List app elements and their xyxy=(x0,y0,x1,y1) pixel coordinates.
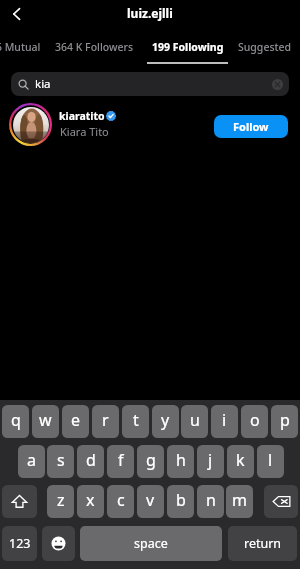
button[interactable]: Emoji xyxy=(42,526,75,561)
button[interactable]: q xyxy=(2,405,29,438)
staticText: p xyxy=(280,409,290,431)
button[interactable]: Follow xyxy=(214,115,288,138)
staticText: b xyxy=(176,489,186,511)
staticText: l xyxy=(268,449,273,471)
button[interactable]: t xyxy=(122,405,149,438)
staticText: luiz.ejlli xyxy=(127,5,173,21)
button[interactable]: Shift xyxy=(2,485,37,518)
staticText: f xyxy=(118,449,124,471)
staticText: return xyxy=(244,535,282,552)
staticText: s xyxy=(57,449,65,471)
staticText: m xyxy=(232,489,247,511)
button[interactable]: o xyxy=(241,405,268,438)
button[interactable]: r xyxy=(92,405,119,438)
button[interactable]: 364 K Followers xyxy=(47,34,141,60)
staticText: 364 K Followers xyxy=(55,40,133,54)
staticText: 199 Following xyxy=(152,40,224,54)
staticText: z xyxy=(57,489,65,511)
staticText: kia xyxy=(35,76,51,92)
button[interactable]: p xyxy=(271,405,298,438)
button[interactable]: kiaratito xyxy=(0,100,300,148)
button[interactable]: j xyxy=(197,445,224,478)
button[interactable]: Numbers and symbols xyxy=(2,526,37,561)
button[interactable]: x xyxy=(77,485,104,518)
staticText: i xyxy=(222,409,227,431)
staticText: g xyxy=(146,449,156,471)
staticText: Follow xyxy=(233,119,269,134)
staticText: t xyxy=(133,409,139,431)
button[interactable]: s xyxy=(47,445,74,478)
staticText: c xyxy=(117,489,125,511)
staticText: r xyxy=(102,409,109,431)
staticText: j xyxy=(208,449,213,471)
button[interactable]: 5 Mutual xyxy=(0,34,49,60)
staticText: h xyxy=(176,449,186,471)
button[interactable]: m xyxy=(226,485,253,518)
staticText: x xyxy=(86,489,95,511)
staticText: v xyxy=(146,489,155,511)
staticText: u xyxy=(190,409,200,431)
staticText: a xyxy=(27,449,36,471)
staticText: n xyxy=(206,489,216,511)
staticText: Kiara Tito xyxy=(60,124,109,139)
button[interactable]: k xyxy=(227,445,254,478)
staticText: kiaratito xyxy=(59,109,105,123)
button[interactable]: v xyxy=(137,485,164,518)
button[interactable]: w xyxy=(32,405,59,438)
button[interactable]: Backspace xyxy=(264,485,298,518)
button[interactable]: l xyxy=(257,445,284,478)
button[interactable]: space xyxy=(80,526,222,561)
staticText: w xyxy=(39,409,52,431)
button[interactable]: e xyxy=(62,405,89,438)
button[interactable]: h xyxy=(167,445,194,478)
button[interactable]: u xyxy=(181,405,208,438)
button[interactable]: Clear text xyxy=(270,77,284,91)
button[interactable]: kia xyxy=(11,72,289,96)
button[interactable]: 199 Following xyxy=(144,34,232,60)
staticText: y xyxy=(161,409,170,431)
button[interactable]: b xyxy=(167,485,194,518)
staticText: o xyxy=(250,409,260,431)
staticText: k xyxy=(236,449,245,471)
button[interactable]: n xyxy=(197,485,224,518)
button[interactable]: g xyxy=(137,445,164,478)
button[interactable]: Suggested xyxy=(230,34,300,60)
staticText: 5 Mutual xyxy=(0,40,41,54)
button[interactable]: d xyxy=(77,445,104,478)
staticText: Suggested xyxy=(238,40,292,54)
staticText: 123 xyxy=(9,535,31,552)
staticText: e xyxy=(71,409,81,431)
button[interactable]: a xyxy=(18,445,45,478)
button[interactable]: z xyxy=(47,485,74,518)
button[interactable]: y xyxy=(152,405,179,438)
button[interactable]: i xyxy=(211,405,238,438)
button[interactable]: return xyxy=(228,526,297,561)
staticText: q xyxy=(11,409,21,431)
button[interactable]: Back xyxy=(5,2,29,26)
staticText: d xyxy=(86,449,96,471)
staticText: space xyxy=(134,535,168,552)
button[interactable]: f xyxy=(107,445,134,478)
button[interactable]: c xyxy=(107,485,134,518)
